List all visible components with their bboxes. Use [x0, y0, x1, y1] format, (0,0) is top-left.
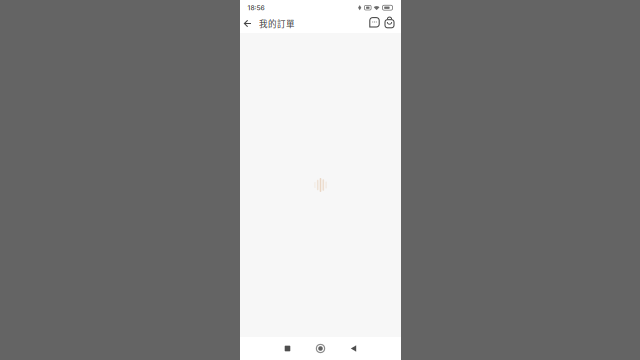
button[interactable]: Messages	[367, 16, 382, 31]
staticText: 18:56	[247, 4, 264, 12]
button[interactable]: Back	[241, 17, 254, 30]
button[interactable]: Back	[337, 338, 370, 358]
button[interactable]: Shopping cart	[382, 15, 397, 31]
button[interactable]: Home	[304, 338, 337, 358]
staticText: 我的訂單	[259, 17, 295, 30]
button[interactable]: Recent apps	[271, 338, 304, 358]
